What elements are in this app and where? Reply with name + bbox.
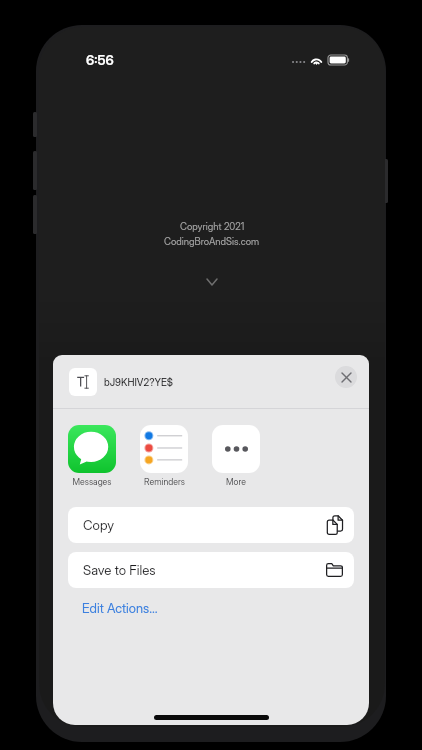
staticText: Edit Actions... [82,600,158,616]
staticText: Save to Files [83,562,156,578]
button[interactable]: Edit Actions... [82,600,158,616]
staticText: Copy [83,517,114,533]
staticText: CodingBroAndSis.com [164,236,260,248]
staticText: bJ9KHIV2?YE$ [104,376,174,388]
button[interactable]: Reminders [140,425,188,487]
button[interactable]: bJ9KHIV2?YE$ [69,368,174,396]
staticText: Messages [72,476,112,487]
button[interactable]: Messages [68,425,116,487]
staticText: More [226,476,246,487]
staticText: Reminders [144,476,185,487]
button[interactable]: More [212,425,260,487]
button[interactable]: Close [335,366,357,388]
button[interactable]: Save to Files [68,552,354,588]
staticText: Copyright 2021 [180,221,245,233]
button[interactable]: Copy [68,507,354,543]
staticText: 6:56 [86,52,114,68]
